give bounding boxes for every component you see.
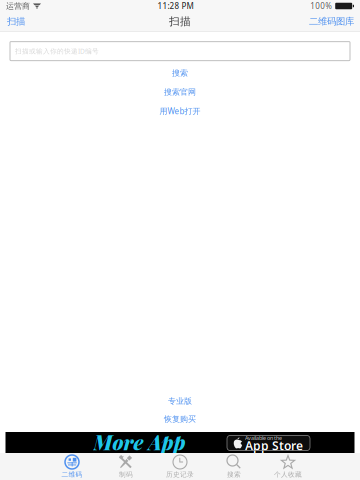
button[interactable]: 用Web打开 (159, 105, 200, 118)
button[interactable]: More App (5, 432, 354, 453)
staticText: 运营商 (6, 1, 30, 11)
staticText: 11:28 PM (158, 1, 194, 11)
staticText: 100% (310, 1, 332, 11)
staticText: More App (93, 429, 185, 455)
staticText: 搜索 (227, 470, 241, 479)
button[interactable]: 恢复购买 (164, 412, 196, 426)
button[interactable]: 搜索 (207, 453, 261, 480)
staticText: 二维码图库 (309, 16, 354, 27)
staticText: 扫描或输入你的快递ID编号 (15, 47, 99, 56)
staticText: 历史记录 (166, 470, 194, 479)
button[interactable]: 搜索 (172, 67, 188, 80)
button[interactable]: 扫描 (0, 12, 32, 31)
staticText: 搜索官网 (164, 87, 196, 97)
staticText: 二维码 (61, 470, 82, 479)
staticText: 恢复购买 (164, 414, 196, 424)
staticText: App Store (245, 437, 303, 453)
staticText: 用Web打开 (159, 106, 200, 116)
staticText: Available on the (245, 434, 282, 442)
staticText: 扫描 (7, 16, 25, 27)
staticText: 扫描 (169, 15, 191, 28)
button[interactable]: 历史记录 (153, 453, 207, 480)
button[interactable]: 二维码 (45, 453, 99, 480)
button[interactable]: 搜索官网 (164, 86, 196, 99)
button[interactable]: 个人收藏 (261, 453, 315, 480)
button[interactable]: 二维码图库 (303, 12, 360, 31)
button[interactable]: 专业版 (168, 394, 192, 408)
button[interactable]: 制码 (99, 453, 153, 480)
staticText: 个人收藏 (274, 470, 302, 479)
staticText: 制码 (119, 470, 133, 479)
staticText: 专业版 (168, 396, 192, 406)
staticText: 搜索 (172, 68, 188, 78)
